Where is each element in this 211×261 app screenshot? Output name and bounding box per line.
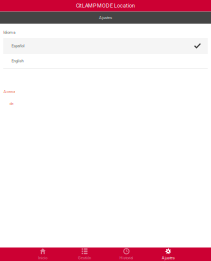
staticText: Acerca <box>3 89 15 94</box>
button[interactable]: English <box>3 54 208 68</box>
staticText: Historial <box>119 255 133 260</box>
staticText: Gestión <box>78 255 91 260</box>
staticText: English <box>11 59 23 63</box>
button[interactable]: Ajustes <box>147 247 189 261</box>
staticText: Idioma <box>3 30 15 35</box>
button[interactable]: Gestión <box>64 247 105 261</box>
button[interactable]: Inicio <box>22 247 64 261</box>
button[interactable]: Historial <box>105 247 147 261</box>
staticText: Inicio <box>38 255 47 260</box>
staticText: CitLAMP MODE Location <box>76 3 135 9</box>
button[interactable]: Español <box>3 38 208 54</box>
button[interactable]: de <box>0 101 211 106</box>
staticText: Ajustes <box>162 255 175 260</box>
staticText: Español <box>11 44 24 48</box>
staticText: de <box>10 101 14 106</box>
staticText: Ajustes <box>99 15 112 20</box>
